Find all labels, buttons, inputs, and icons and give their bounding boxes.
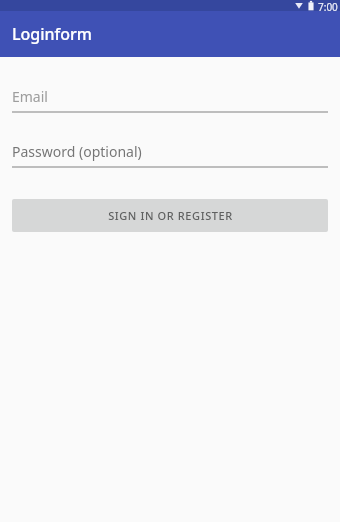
button[interactable]: Password input field — [12, 140, 328, 168]
button[interactable]: Email input field — [12, 85, 328, 113]
staticText: SIGN IN OR REGISTER — [108, 208, 233, 223]
staticText: Password (optional) — [12, 142, 142, 161]
staticText: Email — [12, 87, 48, 106]
staticText: Loginform — [12, 23, 93, 45]
staticText: 7:00 — [318, 0, 338, 11]
button[interactable]: SIGN IN OR REGISTER — [12, 199, 328, 232]
